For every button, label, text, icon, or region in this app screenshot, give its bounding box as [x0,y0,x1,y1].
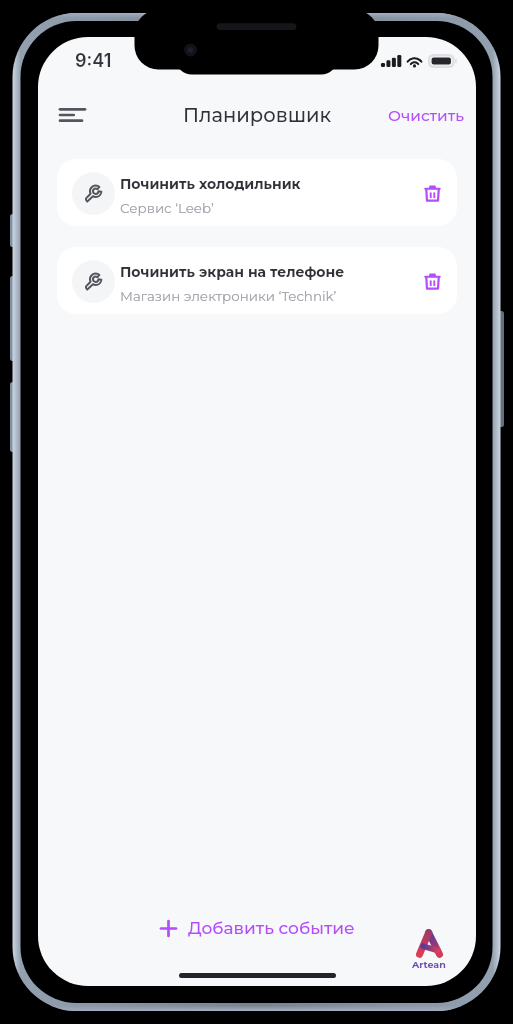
button[interactable]: Menu [51,94,93,136]
button[interactable]: Очистить [382,100,471,131]
button[interactable]: Delete [417,267,447,297]
staticText: Добавить событие [188,918,355,939]
staticText: Магазин электроники ‘Technik’ [120,288,337,304]
button[interactable]: Починить холодильник [57,159,457,226]
staticText: Починить холодильник [120,175,301,192]
staticText: Починить экран на телефоне [120,263,345,280]
button[interactable]: Delete [417,179,447,209]
button[interactable]: Починить экран на телефоне [57,247,457,314]
staticText: 9:41 [75,50,112,72]
staticText: Планировшик [183,103,332,127]
staticText: Artean [412,959,446,971]
button[interactable]: Добавить событие [142,910,373,947]
staticText: Сервис ‘Leeb’ [120,200,214,216]
staticText: Очистить [388,106,465,125]
